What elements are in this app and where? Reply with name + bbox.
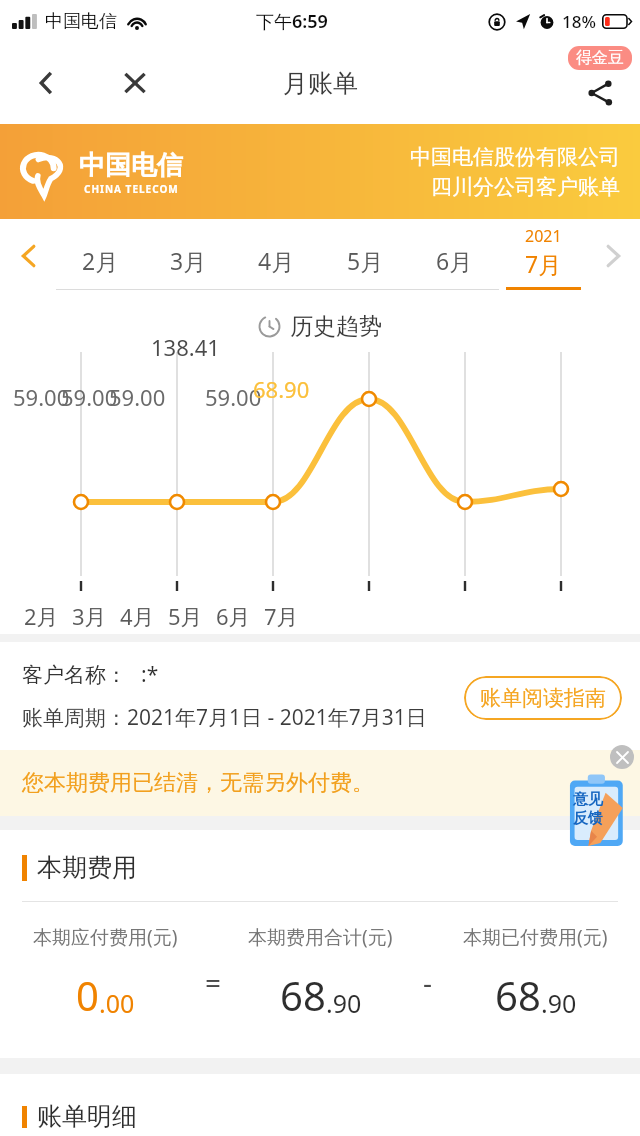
staticText: = (205, 963, 222, 1001)
button[interactable]: Close (112, 60, 158, 106)
staticText: :* (141, 660, 159, 689)
staticText: 6月 (216, 601, 251, 631)
staticText: 5月 (347, 245, 384, 276)
staticText: 4月 (120, 601, 155, 631)
staticText: 2021 (525, 225, 562, 247)
button[interactable]: Share (578, 71, 622, 115)
staticText: 5月 (168, 601, 203, 631)
staticText: 本期费用合计(元) (248, 924, 393, 950)
staticText: 下午6:59 (256, 9, 328, 34)
staticText: 6月 (436, 245, 473, 276)
button[interactable]: 4月 (232, 219, 321, 304)
staticText: 历史趋势 (290, 312, 382, 341)
button[interactable]: Back (24, 60, 70, 106)
staticText: 客户名称： (22, 662, 127, 688)
staticText: 2月 (24, 601, 59, 631)
staticText: 59.00 (13, 382, 70, 412)
staticText: 59.00 (205, 382, 262, 412)
staticText: 68 (495, 968, 541, 1022)
staticText: 本期应付费用(元) (33, 924, 178, 950)
staticText: 月账单 (283, 68, 358, 99)
staticText: 68.90 (253, 374, 310, 404)
staticText: 3月 (170, 245, 207, 276)
staticText: 138.41 (151, 332, 220, 362)
staticText: 账单阅读指南 (480, 685, 606, 711)
staticText: 本期已付费用(元) (463, 924, 608, 950)
staticText: 3月 (72, 601, 107, 631)
staticText: 中国电信股份有限公司 (410, 144, 620, 170)
button[interactable]: 6月 (410, 219, 499, 304)
staticText: 18% (562, 10, 596, 33)
staticText: .90 (541, 986, 577, 1020)
button[interactable]: Previous months (8, 235, 50, 277)
staticText: 59.00 (61, 382, 118, 412)
staticText: 中国电信 (79, 149, 183, 182)
staticText: 账单周期：2021年7月1日 - 2021年7月31日 (22, 703, 427, 732)
button[interactable]: 2021 (499, 219, 588, 304)
staticText: 中国电信 (45, 10, 117, 33)
button[interactable]: 5月 (321, 219, 410, 304)
button[interactable]: 3月 (144, 219, 232, 304)
staticText: 意见 (573, 790, 603, 809)
staticText: .90 (326, 986, 362, 1020)
button[interactable]: 得金豆 (568, 46, 632, 70)
button[interactable]: Feedback (566, 773, 632, 849)
staticText: 7月 (525, 248, 562, 279)
staticText: 您本期费用已结清，无需另外付费。 (22, 769, 374, 797)
staticText: 0 (76, 968, 99, 1022)
button[interactable]: 账单阅读指南 (464, 676, 622, 720)
button[interactable]: Close feedback (610, 745, 634, 769)
staticText: 59.00 (109, 382, 166, 412)
staticText: 4月 (258, 245, 295, 276)
button[interactable]: Next months (592, 235, 634, 277)
staticText: 7月 (264, 601, 299, 631)
staticText: .00 (99, 986, 135, 1020)
staticText: 68 (280, 968, 326, 1022)
staticText: CHINA TELECOM (84, 182, 179, 196)
staticText: 账单明细 (37, 1101, 137, 1132)
staticText: - (423, 963, 433, 1001)
staticText: 反馈 (573, 809, 603, 828)
staticText: 本期费用 (37, 852, 137, 883)
staticText: 得金豆 (576, 48, 624, 68)
button[interactable]: 2月 (56, 219, 144, 304)
staticText: 2月 (82, 245, 119, 276)
staticText: 四川分公司客户账单 (431, 174, 620, 200)
